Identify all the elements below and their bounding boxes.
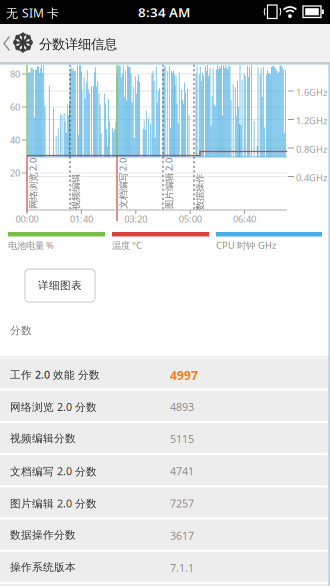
staticText: 01:40 [70, 213, 93, 225]
button[interactable]: Back [0, 34, 14, 53]
staticText: 4741 [170, 464, 194, 478]
staticText: 分数 [10, 324, 32, 337]
staticText: 05:00 [179, 213, 202, 225]
staticText: 电池电量 % [8, 239, 54, 251]
staticText: 视频编辑 [58, 186, 94, 198]
staticText: 3617 [170, 528, 194, 543]
staticText: 4997 [170, 367, 198, 383]
staticText: 00:00 [15, 213, 38, 225]
button[interactable]: 详细图表 [25, 269, 95, 302]
staticText: 网络浏览 2.0 [7, 177, 58, 190]
staticText: 80 [10, 68, 20, 80]
staticText: 无 SIM 卡 [6, 5, 59, 21]
staticText: 分数详细信息 [39, 36, 117, 52]
staticText: 60 [10, 101, 20, 113]
staticText: 操作系统版本 [10, 561, 76, 574]
staticText: 数据操作 [182, 186, 218, 198]
staticText: 06:40 [233, 213, 256, 225]
staticText: 7257 [170, 496, 194, 510]
staticText: 20 [10, 167, 20, 179]
staticText: 0.8GHz [296, 143, 327, 155]
staticText: 1.6GHz [296, 86, 327, 98]
staticText: 图片编辑 2.0 分数 [10, 496, 97, 510]
staticText: CPU 时钟 GHz [216, 239, 276, 251]
staticText: 1.2GHz [296, 114, 327, 127]
staticText: 文档编写 2.0 [97, 177, 148, 190]
staticText: 4893 [170, 400, 194, 414]
staticText: 7.1.1 [170, 561, 194, 575]
staticText: 0.4GHz [296, 171, 327, 184]
staticText: 视频编辑分数 [10, 432, 76, 445]
staticText: 工作 2.0 效能 分数 [10, 367, 100, 382]
staticText: 详细图表 [38, 279, 82, 292]
staticText: 网络浏览 2.0 分数 [10, 400, 97, 414]
staticText: 5115 [170, 432, 194, 446]
staticText: 文档编写 2.0 分数 [10, 464, 97, 478]
staticText: 数据操作分数 [10, 528, 76, 542]
staticText: 8:34 AM [138, 3, 190, 21]
staticText: 40 [10, 134, 20, 146]
staticText: 温度 °C [112, 239, 142, 251]
staticText: 图片编辑 2.0 [143, 177, 194, 190]
staticText: 03:20 [124, 213, 147, 225]
